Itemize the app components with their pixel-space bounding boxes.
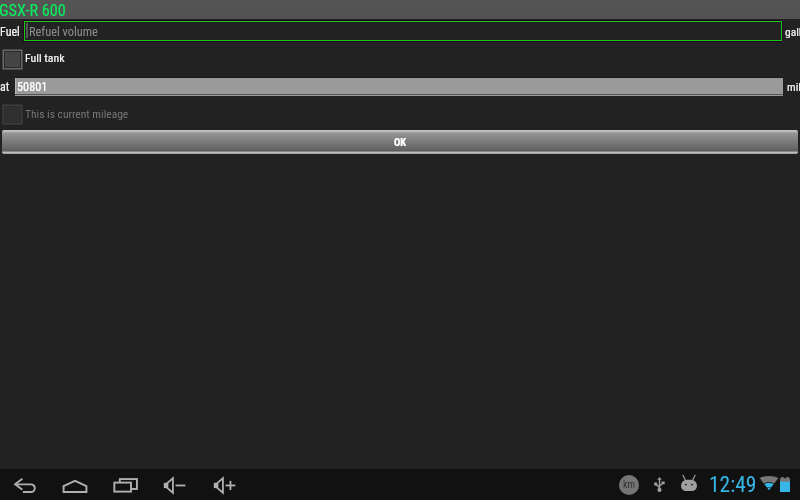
staticText: at (0, 80, 10, 94)
button[interactable]: Refuel volume (23, 20, 783, 42)
button[interactable]: Units km (619, 475, 639, 495)
staticText: mil (787, 80, 800, 93)
button[interactable]: Recent apps (100, 471, 150, 500)
staticText: 12:49 (709, 472, 757, 497)
button[interactable]: Volume down (150, 471, 200, 500)
button[interactable]: Volume up (200, 471, 250, 500)
staticText: This is current mileage (25, 107, 129, 120)
button[interactable]: Home (50, 471, 100, 500)
staticText: Fuel (0, 25, 20, 39)
button[interactable]: Full tank (0, 48, 80, 70)
staticText: gall (785, 25, 800, 38)
button[interactable]: This is current mileage (0, 104, 130, 125)
button[interactable]: 50801 (15, 77, 783, 96)
staticText: km (623, 479, 636, 491)
button[interactable]: OK (2, 130, 798, 154)
staticText: Refuel volume (29, 25, 98, 39)
staticText: GSX-R 600 (0, 1, 66, 20)
staticText: OK (394, 136, 407, 148)
button[interactable]: Back (0, 471, 50, 500)
staticText: 50801 (17, 80, 48, 94)
staticText: Full tank (25, 51, 65, 65)
